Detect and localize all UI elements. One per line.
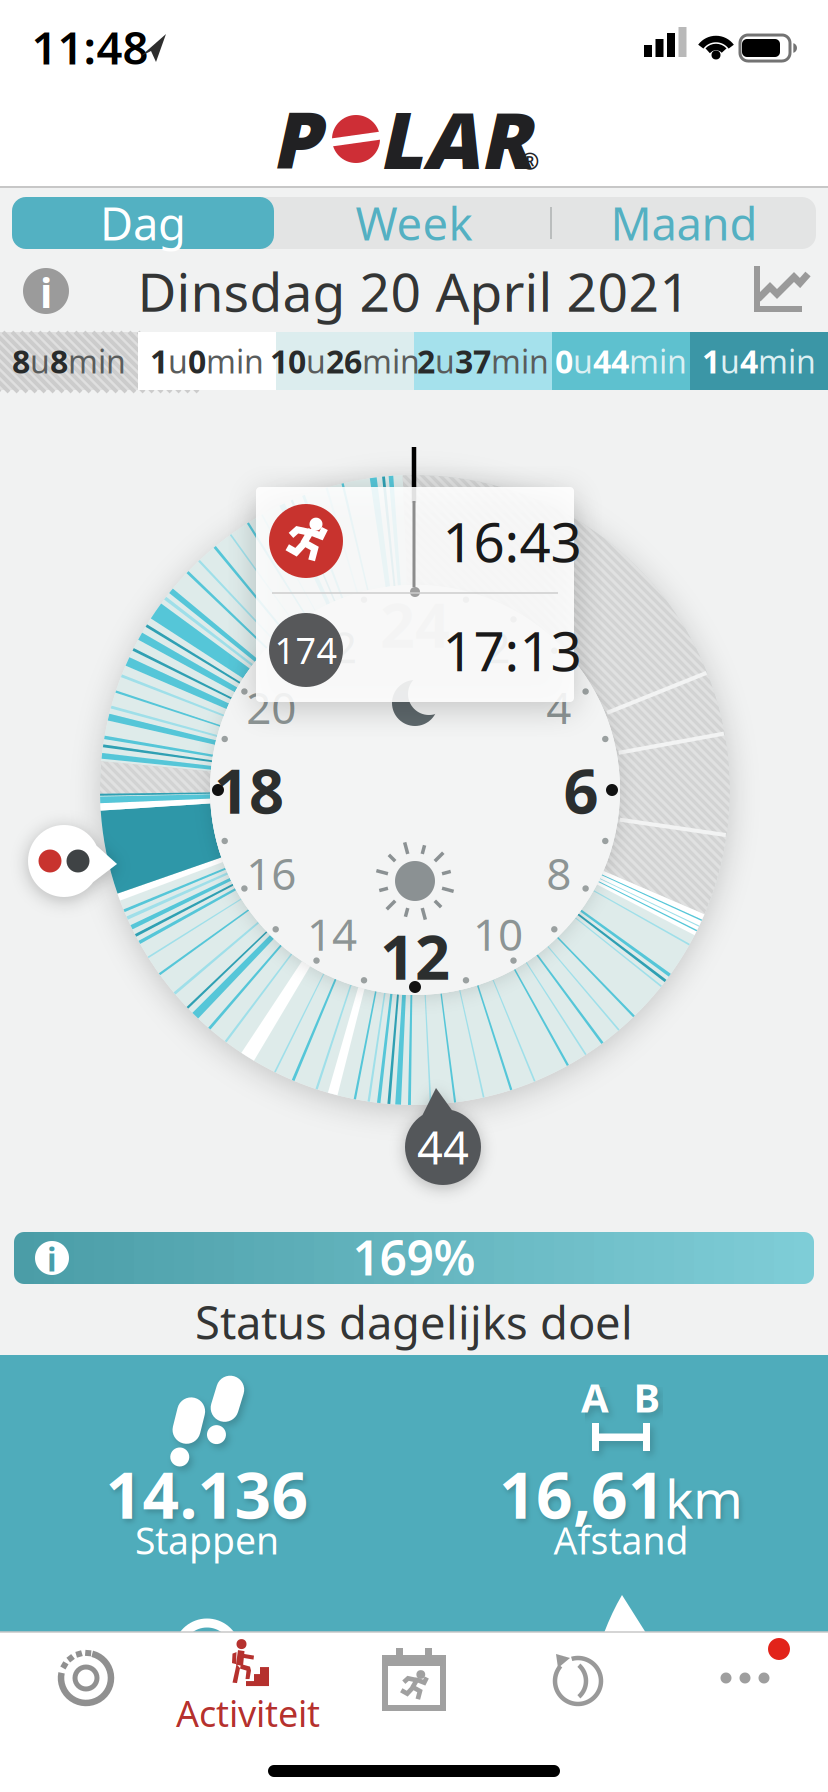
staticText: 16,61: [499, 1451, 665, 1536]
staticText: Afstand: [553, 1515, 688, 1565]
staticText: u: [573, 340, 593, 382]
staticText: 14: [307, 904, 357, 963]
button[interactable]: Dagboek: [380, 1646, 448, 1712]
staticText: 18: [214, 749, 284, 831]
button[interactable]: Synchroniseren: [548, 1648, 608, 1710]
staticText: 22: [307, 617, 357, 675]
staticText: min: [629, 340, 687, 382]
staticText: 1: [702, 340, 720, 382]
staticText: i: [47, 1238, 57, 1280]
staticText: 17:13: [442, 614, 581, 686]
button[interactable]: Maand: [549, 197, 819, 249]
staticText: 0: [555, 340, 573, 382]
button[interactable]: 2: [414, 332, 552, 390]
button[interactable]: Info: [23, 268, 69, 314]
staticText: 16:43: [442, 505, 581, 577]
staticText: u: [720, 340, 740, 382]
staticText: 44: [417, 1117, 469, 1177]
staticText: 37: [455, 340, 491, 382]
staticText: 4: [740, 340, 758, 382]
staticText: 169%: [352, 1225, 475, 1289]
button[interactable]: Feed: [46, 1640, 122, 1716]
staticText: 26: [326, 340, 362, 382]
staticText: 8: [12, 340, 30, 382]
staticText: min: [68, 340, 126, 382]
staticText: i: [40, 265, 52, 319]
button[interactable]: 1: [138, 332, 276, 390]
staticText: 12: [380, 915, 450, 997]
staticText: 1: [150, 340, 168, 382]
staticText: u: [435, 340, 455, 382]
staticText: 4: [546, 678, 571, 736]
button[interactable]: Info: [35, 1241, 69, 1275]
staticText: 2: [485, 617, 510, 675]
button[interactable]: Week: [279, 197, 549, 249]
staticText: Status dagelijks doel: [195, 1292, 633, 1352]
button[interactable]: 10: [276, 332, 414, 390]
button[interactable]: Grafiek: [754, 265, 810, 313]
button[interactable]: 0: [552, 332, 690, 390]
staticText: Dag: [100, 193, 186, 253]
button[interactable]: 8: [0, 332, 138, 390]
staticText: B: [633, 1370, 660, 1423]
staticText: A: [581, 1370, 609, 1423]
staticText: 11:48: [31, 17, 148, 77]
staticText: min: [206, 340, 264, 382]
staticText: 20: [246, 678, 296, 736]
staticText: 6: [563, 749, 598, 831]
staticText: min: [758, 340, 816, 382]
staticText: 10: [473, 904, 523, 963]
staticText: P: [278, 88, 327, 190]
staticText: min: [491, 340, 549, 382]
staticText: u: [168, 340, 188, 382]
staticText: 16: [246, 844, 296, 902]
staticText: km: [665, 1463, 743, 1533]
button[interactable]: Activiteit: [176, 1639, 320, 1737]
staticText: 14.136: [105, 1451, 308, 1536]
staticText: u: [306, 340, 326, 382]
staticText: Stappen: [135, 1515, 279, 1565]
button[interactable]: Meer: [705, 1648, 785, 1708]
staticText: ®: [520, 146, 539, 176]
button[interactable]: Dag: [12, 193, 274, 253]
staticText: 0: [188, 340, 206, 382]
staticText: Week: [355, 193, 472, 253]
button[interactable]: 1: [690, 332, 828, 390]
staticText: Maand: [610, 193, 757, 253]
staticText: 174: [274, 626, 337, 674]
staticText: 44: [593, 340, 629, 382]
staticText: 10: [270, 340, 306, 382]
staticText: 2: [417, 340, 435, 382]
staticText: 8: [546, 844, 571, 902]
staticText: u: [30, 340, 50, 382]
staticText: LAR: [385, 88, 538, 190]
staticText: Activiteit: [176, 1689, 320, 1737]
staticText: Dinsdag 20 April 2021: [137, 256, 690, 326]
staticText: 24: [380, 583, 450, 665]
staticText: min: [362, 340, 420, 382]
staticText: 8: [50, 340, 68, 382]
